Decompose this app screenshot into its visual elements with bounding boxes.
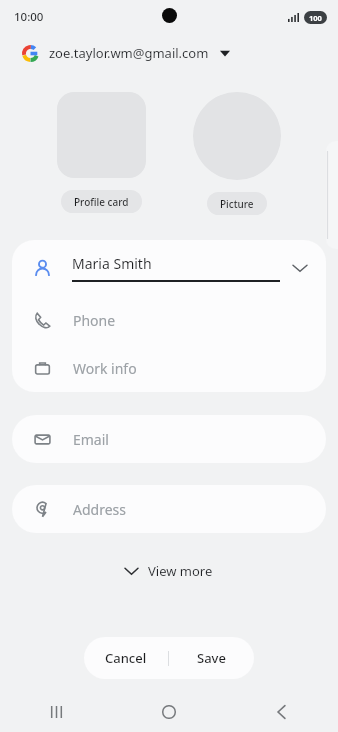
staticText: Cancel [105, 649, 147, 667]
button[interactable]: Maria Smith [12, 240, 326, 296]
staticText: 100 [309, 13, 322, 23]
button[interactable]: Save [169, 637, 254, 679]
button[interactable]: zoe.taylor.wm@gmail.com [0, 38, 338, 68]
button[interactable]: Expand name details [288, 256, 312, 280]
staticText: Profile card [74, 195, 129, 209]
staticText: View more [148, 562, 213, 580]
staticText: Maria Smith [72, 254, 152, 273]
button[interactable]: Home [112, 692, 225, 732]
staticText: 10:00 [14, 9, 44, 25]
button[interactable]: View more [111, 556, 227, 586]
button[interactable]: Phone [12, 296, 326, 344]
button[interactable]: Cancel [84, 637, 168, 679]
button[interactable]: Email [12, 415, 326, 463]
button[interactable]: Address [12, 485, 326, 533]
button[interactable]: Picture preview [193, 92, 281, 180]
staticText: zoe.taylor.wm@gmail.com [49, 44, 209, 62]
button[interactable]: Profile card [61, 190, 142, 213]
staticText: Work info [73, 359, 137, 378]
button[interactable]: More templates [326, 141, 338, 249]
staticText: Phone [73, 311, 116, 330]
button[interactable]: Picture [207, 192, 267, 215]
button[interactable]: Work info [12, 344, 326, 392]
staticText: Picture [220, 197, 254, 211]
staticText: Save [197, 649, 226, 667]
staticText: Email [73, 430, 109, 449]
staticText: Address [73, 500, 126, 519]
button[interactable]: Recent apps [0, 692, 112, 732]
button[interactable]: Back [225, 692, 338, 732]
